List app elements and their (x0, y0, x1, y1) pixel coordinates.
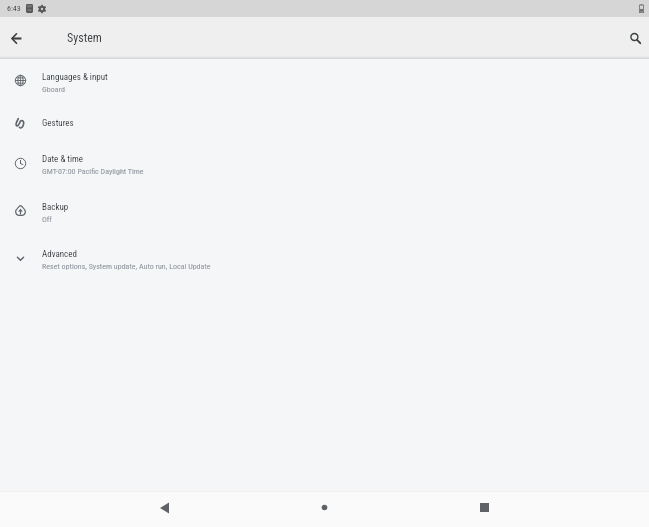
button[interactable]: Date & time (0, 141, 649, 189)
staticText: Backup (42, 202, 69, 213)
staticText: Languages & input (42, 72, 108, 83)
button[interactable]: Back (0, 18, 33, 58)
staticText: Gboard (42, 85, 65, 94)
button[interactable]: Backup (0, 189, 649, 236)
staticText: Off (42, 215, 52, 224)
staticText: Date & time (42, 154, 84, 165)
staticText: Advanced (42, 249, 77, 260)
staticText: Gestures (42, 118, 74, 129)
button[interactable]: Home (244, 491, 404, 527)
button[interactable]: Gestures (0, 106, 649, 141)
staticText: GMT-07:00 Pacific Daylight Time (42, 167, 144, 176)
staticText: 6:43 (7, 4, 21, 13)
staticText: System (67, 31, 102, 45)
staticText: Reset options, System update, Auto run, … (42, 262, 211, 271)
button[interactable]: Search (622, 18, 649, 58)
button[interactable]: Languages & input (0, 59, 649, 106)
button[interactable]: Back (84, 491, 244, 527)
button[interactable]: Recents (404, 491, 564, 527)
button[interactable]: Advanced (0, 236, 649, 284)
